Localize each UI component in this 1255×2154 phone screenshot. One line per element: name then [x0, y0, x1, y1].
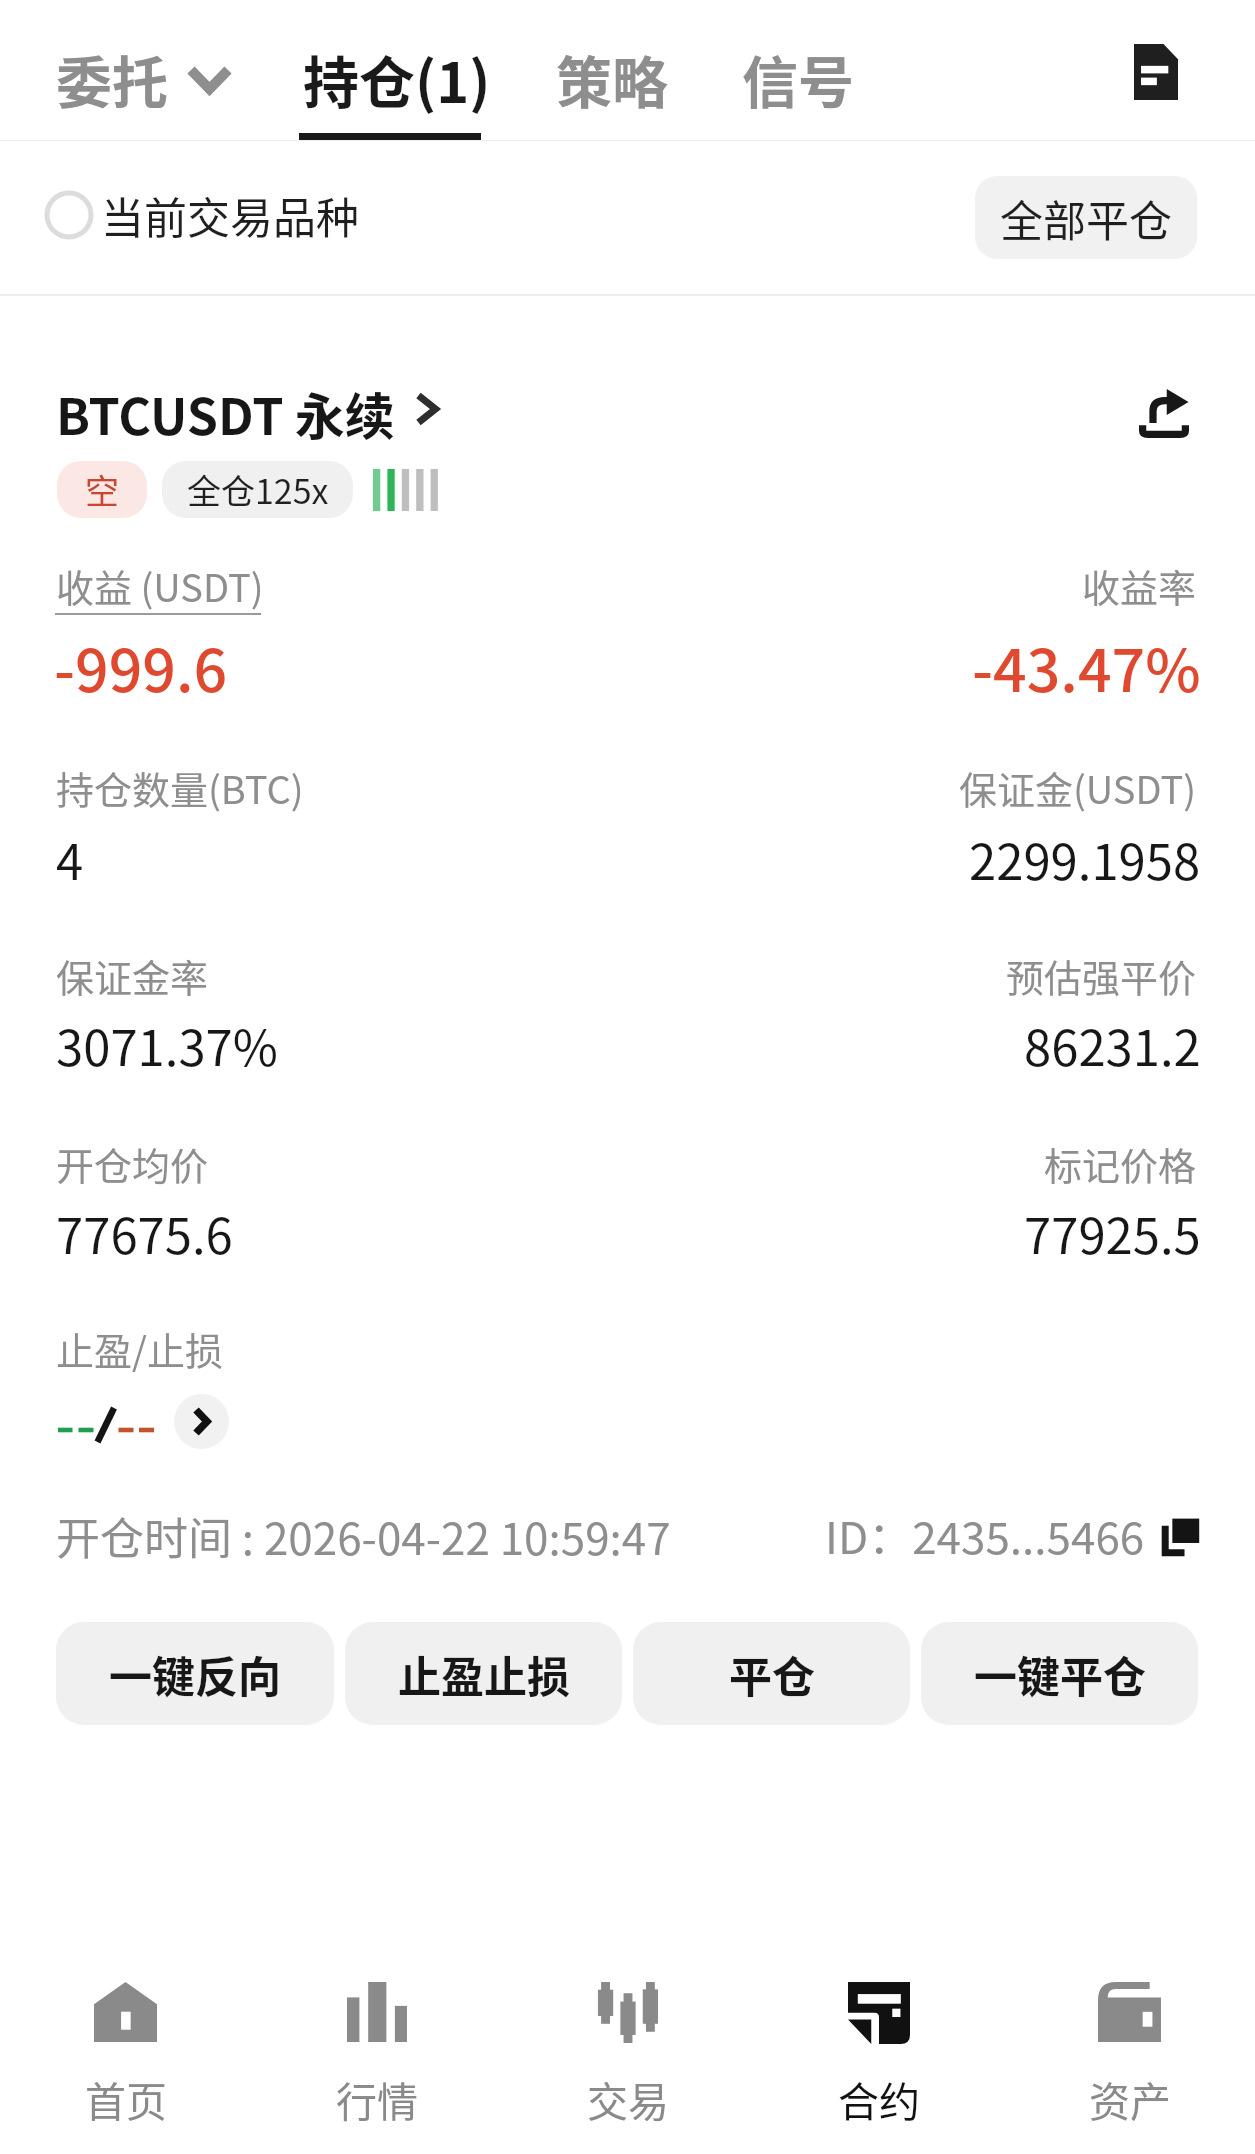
staticText: 86231.2 — [1024, 1009, 1201, 1080]
button[interactable]: Share — [1120, 369, 1208, 457]
staticText: 首页 — [85, 2069, 167, 2128]
staticText: 标记价格 — [1044, 1136, 1197, 1191]
staticText: 全仓125x — [187, 465, 329, 514]
staticText: 开仓均价 — [56, 1136, 209, 1191]
staticText: -43.47% — [972, 624, 1201, 709]
staticText: 77925.5 — [1024, 1197, 1201, 1268]
button[interactable]: 持仓(1) — [303, 38, 491, 119]
staticText: 委托 — [56, 38, 168, 119]
staticText: 77675.6 — [56, 1197, 233, 1268]
staticText: ID：2435...5466 — [825, 1503, 1145, 1567]
staticText: BTCUSDT 永续 — [56, 377, 395, 449]
staticText: 止盈/止损 — [56, 1321, 223, 1376]
staticText: 空 — [85, 465, 119, 514]
staticText: 预估强平价 — [1006, 948, 1197, 1003]
button[interactable]: 策略 — [556, 38, 668, 119]
staticText: 一键平仓 — [974, 1643, 1146, 1705]
staticText: 交易 — [587, 2069, 669, 2128]
staticText: 行情 — [336, 2069, 418, 2128]
button[interactable]: 止盈止损 — [345, 1622, 622, 1725]
button[interactable]: 平仓 — [633, 1622, 910, 1725]
staticText: -999.6 — [54, 624, 228, 709]
staticText: 资产 — [1089, 2069, 1171, 2128]
button[interactable]: BTCUSDT 永续 — [56, 377, 419, 449]
staticText: 保证金(USDT) — [959, 760, 1197, 815]
staticText: 收益 (USDT) — [56, 558, 264, 613]
button[interactable]: 交易 — [502, 1965, 753, 2150]
staticText: 持仓(1) — [303, 38, 491, 119]
button[interactable]: 一键平仓 — [921, 1622, 1198, 1725]
staticText: 一键反向 — [109, 1643, 281, 1705]
staticText: 信号 — [742, 38, 854, 119]
staticText: 3071.37% — [56, 1009, 278, 1080]
staticText: 止盈止损 — [398, 1643, 570, 1705]
staticText: 开仓时间 : 2026-04-22 10:59:47 — [56, 1504, 671, 1568]
staticText: 2299.1958 — [969, 823, 1201, 894]
button[interactable]: 行情 — [251, 1965, 502, 2150]
staticText: 4 — [56, 823, 84, 894]
button[interactable]: 全部平仓 — [975, 176, 1197, 259]
button[interactable]: 首页 — [0, 1965, 251, 2150]
staticText: 平仓 — [729, 1643, 815, 1705]
button[interactable]: Order records — [1114, 30, 1198, 114]
staticText: 保证金率 — [56, 948, 209, 1003]
staticText: 收益率 — [1082, 558, 1197, 613]
staticText: 当前交易品种 — [101, 184, 359, 246]
staticText: 策略 — [556, 38, 668, 119]
button[interactable]: 信号 — [742, 38, 854, 119]
button[interactable]: ID：2435...5466 — [821, 1499, 1207, 1571]
button[interactable]: 一键反向 — [56, 1622, 334, 1725]
staticText: 持仓数量(BTC) — [56, 760, 304, 815]
button[interactable] — [52, 1393, 235, 1449]
button[interactable]: 资产 — [1004, 1965, 1255, 2150]
button[interactable]: 当前交易品种 — [30, 174, 373, 256]
button[interactable]: 合约 — [753, 1965, 1004, 2150]
button[interactable]: 委托 — [56, 38, 215, 119]
staticText: 全部平仓 — [1000, 187, 1172, 249]
staticText: 合约 — [838, 2069, 920, 2128]
